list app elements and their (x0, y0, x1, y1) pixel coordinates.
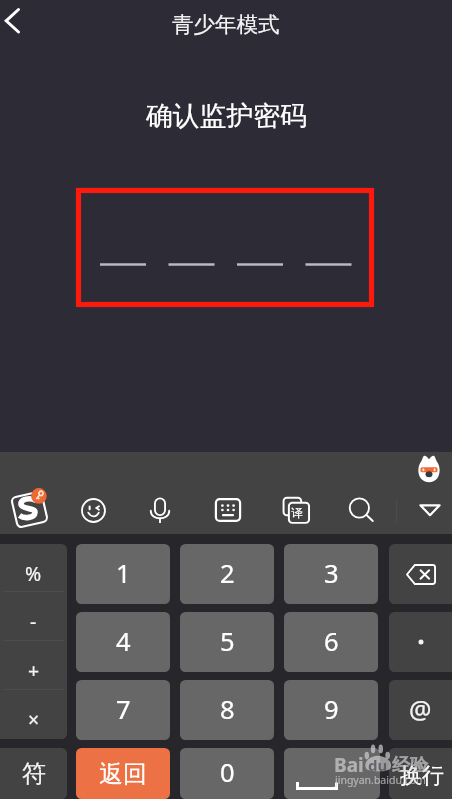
button[interactable]: Back (0, 0, 34, 46)
staticText: du (368, 755, 388, 775)
button[interactable]: 8 (180, 680, 274, 740)
button[interactable]: 换行 (389, 748, 452, 799)
staticText: 3 (324, 556, 339, 591)
staticText: 9 (324, 692, 339, 727)
button[interactable]: % (0, 544, 67, 592)
staticText: × (28, 706, 40, 733)
button[interactable]: 0 (180, 748, 274, 799)
button[interactable]: 4 (76, 612, 170, 672)
staticText: 换行 (400, 762, 444, 790)
staticText: 5 (220, 624, 235, 659)
staticText: 1 (116, 556, 131, 591)
button[interactable]: New line (284, 748, 380, 799)
button[interactable]: Translate (283, 486, 311, 534)
button[interactable]: 返回 (76, 748, 170, 799)
staticText: 经验 (392, 754, 428, 777)
button[interactable]: 7 (76, 680, 170, 740)
button[interactable]: Backspace (389, 544, 452, 604)
button[interactable]: + (0, 641, 67, 690)
staticText: 符 (22, 759, 46, 789)
button[interactable]: 6 (284, 612, 378, 672)
button[interactable]: 9 (284, 680, 378, 740)
staticText: 2 (220, 556, 235, 591)
staticText: 7 (116, 692, 131, 727)
button[interactable]: - (0, 592, 67, 641)
button[interactable] (389, 612, 452, 672)
staticText: + (28, 657, 40, 684)
button[interactable]: Sogou input (4, 486, 52, 534)
button[interactable]: Hide keyboard (415, 486, 445, 534)
staticText: 4 (116, 624, 131, 659)
staticText: 青少年模式 (172, 11, 280, 38)
staticText: @ (409, 692, 432, 726)
staticText: Bai (334, 752, 364, 778)
button[interactable]: @ (389, 680, 452, 740)
staticText: 0 (220, 755, 235, 790)
button[interactable]: 3 (284, 544, 378, 604)
button[interactable]: 符 (0, 748, 67, 799)
staticText: 8 (220, 692, 235, 727)
staticText: 译 (291, 505, 303, 520)
button[interactable]: Emoji (80, 486, 106, 534)
button[interactable]: Voice input (147, 486, 173, 534)
button[interactable]: × (0, 690, 67, 739)
button[interactable]: Search (348, 486, 374, 534)
button[interactable]: Sogou assistant (417, 455, 441, 482)
staticText: - (30, 608, 37, 635)
staticText: jingyan.baidu.com (335, 773, 426, 787)
staticText: % (25, 560, 42, 587)
staticText: 6 (324, 624, 339, 659)
button[interactable]: Keyboard (214, 486, 241, 534)
staticText: 确认监护密码 (146, 99, 307, 133)
button[interactable]: 5 (180, 612, 274, 672)
button[interactable]: 1 (76, 544, 170, 604)
staticText: 返回 (99, 759, 147, 789)
button[interactable]: 2 (180, 544, 274, 604)
